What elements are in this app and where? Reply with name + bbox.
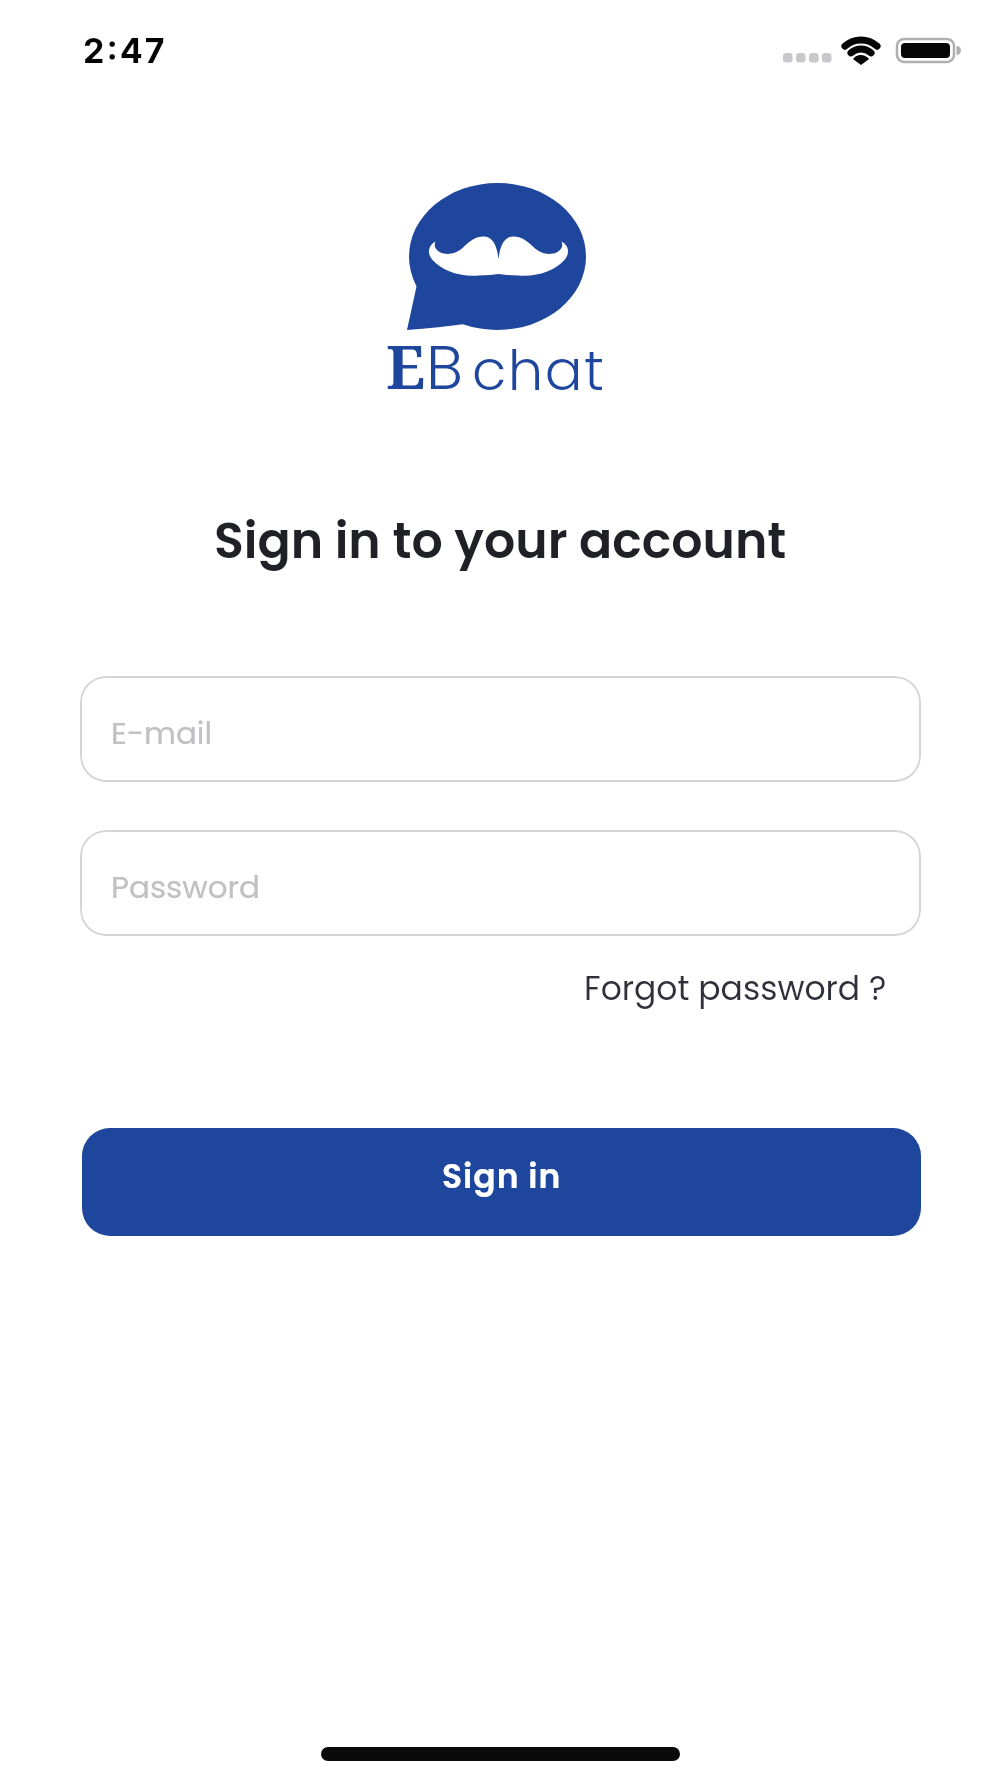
- button[interactable]: Forgot password ?: [584, 965, 887, 1011]
- staticText: B: [426, 324, 464, 411]
- staticText: Sign in to your account: [214, 507, 787, 576]
- staticText: E: [386, 325, 426, 407]
- staticText: E-mail: [111, 711, 213, 754]
- button[interactable]: Sign in: [82, 1128, 921, 1236]
- button[interactable]: Password: [80, 830, 921, 936]
- staticText: chat: [472, 331, 606, 409]
- staticText: 2:47: [83, 30, 167, 71]
- staticText: Sign in: [442, 1153, 562, 1199]
- button[interactable]: E-mail: [80, 676, 921, 782]
- staticText: Password: [111, 865, 261, 908]
- staticText: Forgot password ?: [584, 965, 887, 1011]
